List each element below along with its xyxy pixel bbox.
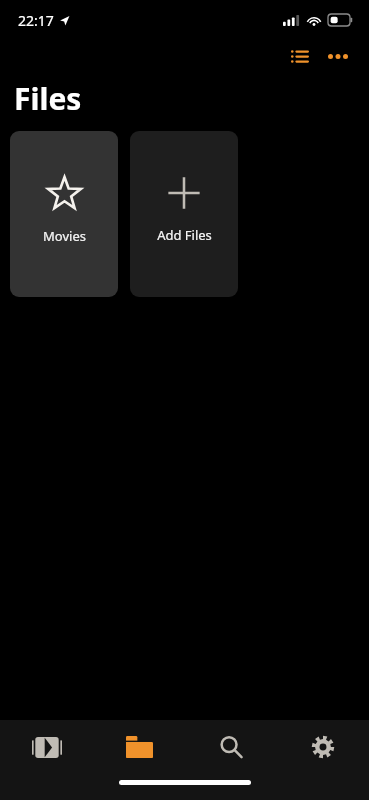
button[interactable]: Add files	[130, 131, 238, 297]
button[interactable]: Movies folder	[10, 131, 118, 297]
button[interactable]: Settings	[277, 720, 369, 774]
button[interactable]: More options	[321, 40, 355, 72]
staticText: Add Files	[157, 226, 212, 244]
staticText: Movies	[43, 227, 86, 245]
button[interactable]: Search	[185, 720, 277, 774]
staticText: Files	[14, 78, 82, 119]
staticText: 22:17	[18, 11, 54, 30]
button[interactable]: List view	[283, 40, 317, 72]
button[interactable]: Files	[93, 720, 185, 774]
button[interactable]: Videos	[0, 720, 93, 774]
